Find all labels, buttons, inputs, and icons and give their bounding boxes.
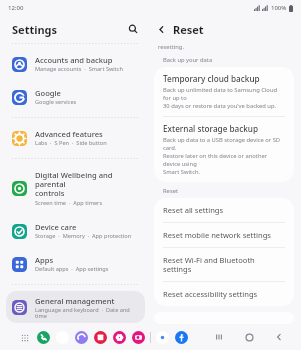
staticText: 12:00	[8, 4, 24, 12]
staticText: Back up your data	[163, 56, 213, 64]
button[interactable]: Temporary cloud backup	[154, 67, 294, 116]
button[interactable]: App 2	[75, 331, 88, 344]
staticText: Labs · S Pen · Side button	[35, 139, 107, 147]
button[interactable]: Home	[241, 329, 257, 345]
button[interactable]: Reset accessibility settings	[154, 282, 294, 306]
staticText: External storage backup	[163, 123, 259, 134]
button[interactable]: Google	[6, 83, 145, 111]
button[interactable]: Apps	[6, 250, 145, 278]
staticText: Language and keyboard · Date and time	[35, 306, 139, 318]
button[interactable]: Recents	[211, 329, 227, 345]
button[interactable]: Reset Wi-Fi and Bluetooth settings	[154, 248, 294, 281]
staticText: Back up unlimited data to Samsung Cloud …	[163, 86, 285, 110]
button[interactable]: Accounts and backup	[6, 50, 145, 78]
button[interactable]: App 7	[175, 331, 188, 344]
staticText: Storage · Memory · App protection	[35, 232, 132, 240]
button[interactable]: Device care	[6, 217, 145, 245]
staticText: Back up data to a USB storage device or …	[163, 136, 285, 176]
button[interactable]: Search	[125, 21, 141, 37]
staticText: General management	[35, 296, 115, 306]
staticText: Advanced features	[35, 129, 103, 139]
button[interactable]: All apps	[18, 331, 31, 344]
staticText: resetting.	[158, 43, 184, 51]
staticText: Default apps · App settings	[35, 265, 109, 273]
staticText: Accounts and backup	[35, 55, 113, 65]
staticText: Reset	[173, 22, 204, 37]
button[interactable]: Advanced features	[6, 124, 145, 152]
button[interactable]: Reset all settings	[154, 198, 294, 222]
button[interactable]: App 0	[37, 331, 50, 344]
staticText: Reset mobile network settings	[163, 230, 271, 240]
staticText: Reset Wi-Fi and Bluetooth settings	[163, 255, 285, 274]
button[interactable]: Back	[154, 22, 169, 37]
button[interactable]: General management	[6, 291, 145, 323]
staticText: Manage accounts · Smart Switch	[35, 65, 123, 73]
staticText: 100%	[271, 4, 287, 12]
staticText: Reset	[163, 187, 179, 195]
staticText: Google	[35, 88, 61, 98]
button[interactable]: External storage backup	[154, 117, 294, 182]
staticText: Reset all settings	[163, 205, 224, 215]
staticText: Device care	[35, 222, 77, 232]
staticText: Reset accessibility settings	[163, 289, 258, 299]
button[interactable]: Reset mobile network settings	[154, 223, 294, 247]
button[interactable]: App 3	[94, 331, 107, 344]
button[interactable]: Back	[271, 329, 287, 345]
button[interactable]: Digital Wellbeing and parental controls	[6, 165, 145, 212]
staticText: Screen time · App timers	[35, 199, 103, 207]
staticText: Digital Wellbeing and parental controls	[35, 170, 139, 199]
button[interactable]: App 4	[113, 331, 126, 344]
staticText: Settings	[12, 22, 58, 37]
button[interactable]: App 6	[156, 331, 169, 344]
staticText: Apps	[35, 255, 54, 265]
button[interactable]: App 5	[132, 331, 145, 344]
staticText: Temporary cloud backup	[163, 73, 260, 84]
staticText: Google services	[35, 98, 77, 106]
